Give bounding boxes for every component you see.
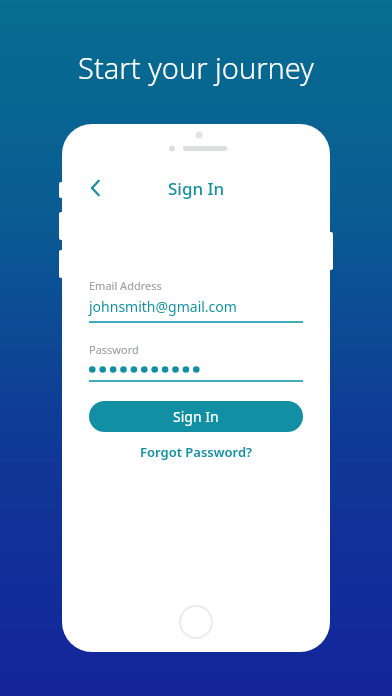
staticText: Start your journey — [78, 48, 314, 87]
staticText: Email Address — [89, 278, 162, 293]
button[interactable]: Forgot Password? — [132, 440, 261, 464]
staticText: Sign In — [173, 407, 219, 426]
button[interactable]: Sign In — [89, 401, 303, 432]
staticText: Sign In — [168, 177, 225, 200]
staticText: Forgot Password? — [140, 443, 253, 461]
button[interactable]: Back — [80, 172, 112, 204]
staticText: Password — [89, 342, 139, 357]
button[interactable]: Home — [179, 605, 213, 639]
staticText: johnsmith@gmail.com — [89, 297, 237, 316]
